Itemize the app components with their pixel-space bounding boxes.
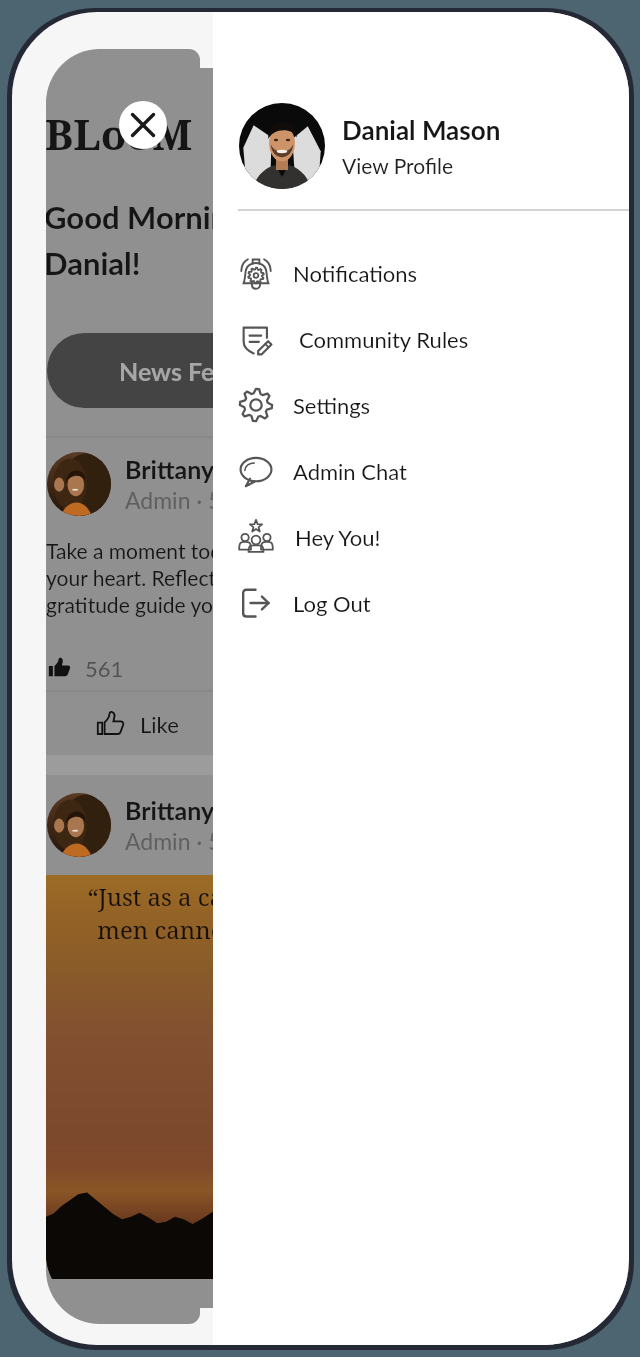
- staticText: Community Rules: [299, 326, 469, 352]
- staticText: News Feed: [119, 356, 242, 386]
- staticText: View Profile: [342, 153, 454, 178]
- button[interactable]: Danial Mason: [239, 103, 501, 189]
- staticText: BLooM: [46, 105, 193, 162]
- staticText: Brittany Doe: [125, 454, 267, 484]
- button[interactable]: Admin Chat: [213, 438, 629, 504]
- staticText: Like: [140, 711, 179, 737]
- button[interactable]: News Feed: [47, 333, 313, 408]
- button[interactable]: Like: [46, 692, 226, 755]
- button[interactable]: Log Out: [213, 570, 629, 636]
- staticText: “Just as a candle cannot burn without fi…: [87, 880, 570, 946]
- button[interactable]: Hey You!: [213, 504, 629, 570]
- staticText: Brittany Doe: [125, 795, 267, 825]
- staticText: Log Out: [293, 590, 371, 616]
- staticText: Admin Chat: [293, 458, 407, 484]
- staticText: Admin · 50 min: [125, 827, 279, 855]
- staticText: Admin · 50 min: [125, 486, 279, 514]
- staticText: Settings: [293, 392, 371, 418]
- staticText: Hey You!: [295, 524, 381, 550]
- staticText: Take a moment today to appreciate what f…: [46, 538, 457, 618]
- button[interactable]: Settings: [213, 372, 629, 438]
- staticText: Danial Mason: [342, 114, 501, 145]
- button[interactable]: Community Rules: [213, 306, 629, 372]
- button[interactable]: Close menu: [119, 101, 167, 149]
- staticText: 561: [85, 655, 124, 681]
- button[interactable]: Notifications: [213, 240, 629, 306]
- staticText: Good Morning Danial!: [46, 198, 245, 281]
- staticText: Notifications: [293, 260, 418, 286]
